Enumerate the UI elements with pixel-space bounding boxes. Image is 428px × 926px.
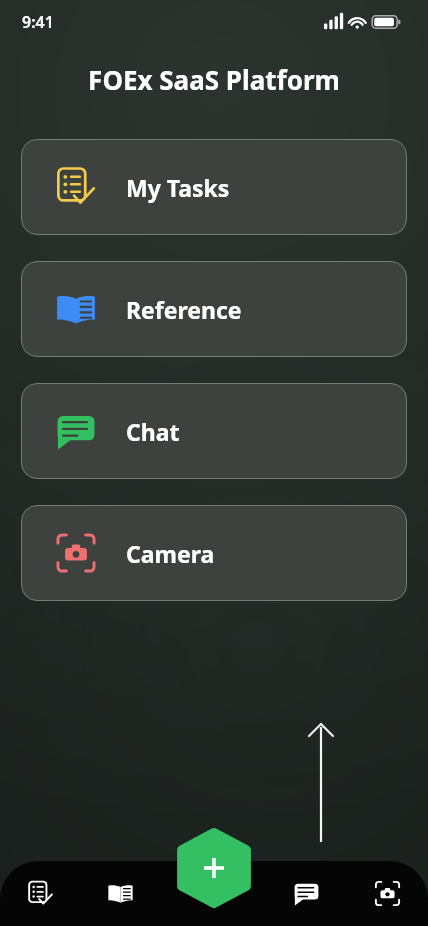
- staticText: Reference: [126, 294, 242, 325]
- button[interactable]: Reference: [21, 261, 407, 357]
- staticText: My Tasks: [126, 172, 230, 203]
- staticText: FOEx SaaS Platform: [0, 62, 428, 97]
- button[interactable]: My Tasks: [21, 139, 407, 235]
- button[interactable]: Chat: [21, 383, 407, 479]
- button[interactable]: Camera: [347, 880, 428, 926]
- staticText: Camera: [126, 538, 215, 569]
- button[interactable]: Add: [178, 828, 250, 908]
- button[interactable]: Reference: [80, 880, 161, 926]
- staticText: Chat: [126, 416, 180, 447]
- button[interactable]: My Tasks: [0, 880, 80, 926]
- button[interactable]: Camera: [21, 505, 407, 601]
- button[interactable]: Chat: [266, 880, 347, 926]
- staticText: 9:41: [22, 11, 54, 33]
